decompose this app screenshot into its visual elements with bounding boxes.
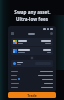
button[interactable]: Trade [8,92,56,98]
button[interactable] [11,38,53,46]
button[interactable]: Settings [50,32,53,35]
button[interactable] [11,60,53,67]
staticText: Swap any asset. [14,9,51,15]
button[interactable]: Swap direction [30,56,34,60]
staticText: Ultra-low fees [16,16,48,22]
button[interactable] [11,47,53,55]
staticText: Trade [27,93,37,98]
button[interactable]: Back [11,32,14,35]
